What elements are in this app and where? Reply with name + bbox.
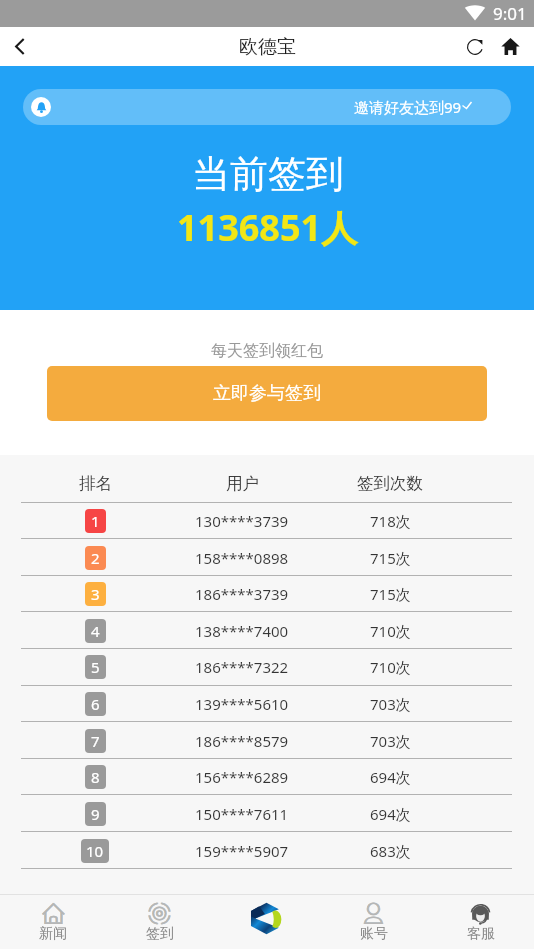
button[interactable]: 邀请好友达到99 <box>23 89 511 125</box>
staticText: 150****7611 <box>195 804 289 824</box>
staticText: 5 <box>91 657 100 677</box>
button[interactable]: 10 <box>0 833 534 869</box>
button[interactable]: 8 <box>0 759 534 795</box>
staticText: 客服 <box>467 925 495 943</box>
staticText: 9:01 <box>493 2 527 25</box>
staticText: 7 <box>91 731 100 751</box>
staticText: 715次 <box>370 548 411 568</box>
staticText: 6 <box>91 694 100 714</box>
staticText: 账号 <box>360 925 388 943</box>
staticText: 159****5907 <box>195 841 289 861</box>
staticText: 邀请好友达到99 <box>354 97 462 117</box>
staticText: 排名 <box>79 473 112 494</box>
button[interactable]: 新闻 <box>0 895 106 949</box>
button[interactable]: Home <box>493 27 527 66</box>
staticText: 每天签到领红包 <box>211 341 323 361</box>
button[interactable]: 6 <box>0 686 534 722</box>
staticText: 715次 <box>370 584 411 604</box>
staticText: 签到 <box>146 925 174 943</box>
button[interactable]: 1 <box>0 503 534 539</box>
staticText: 186****3739 <box>195 584 289 604</box>
staticText: 8 <box>91 767 100 787</box>
staticText: 156****6289 <box>195 767 289 787</box>
staticText: 1136851人 <box>177 203 358 252</box>
staticText: 138****7400 <box>195 621 289 641</box>
button[interactable]: 2 <box>0 540 534 576</box>
staticText: 130****3739 <box>195 511 289 531</box>
staticText: 683次 <box>370 841 411 861</box>
staticText: 10 <box>86 841 104 861</box>
button[interactable]: 账号 <box>320 895 427 949</box>
button[interactable]: 9 <box>0 796 534 832</box>
staticText: 186****8579 <box>195 731 289 751</box>
button[interactable]: 立即参与签到 <box>47 366 487 421</box>
staticText: 710次 <box>370 621 411 641</box>
staticText: 703次 <box>370 731 411 751</box>
staticText: 新闻 <box>39 925 67 943</box>
staticText: 1 <box>91 511 100 531</box>
staticText: 718次 <box>370 511 411 531</box>
staticText: 139****5610 <box>195 694 289 714</box>
button[interactable]: Home logo <box>213 895 320 949</box>
staticText: 2 <box>91 548 100 568</box>
staticText: 703次 <box>370 694 411 714</box>
staticText: 签到次数 <box>357 473 423 494</box>
button[interactable]: 4 <box>0 613 534 649</box>
staticText: 用户 <box>226 473 259 494</box>
staticText: 158****0898 <box>195 548 289 568</box>
staticText: 710次 <box>370 657 411 677</box>
button[interactable]: 签到 <box>106 895 213 949</box>
staticText: 欧德宝 <box>239 35 296 59</box>
button[interactable]: 3 <box>0 576 534 612</box>
staticText: 当前签到 <box>192 150 344 198</box>
staticText: 3 <box>91 584 100 604</box>
staticText: 694次 <box>370 767 411 787</box>
button[interactable]: Refresh <box>458 27 492 66</box>
button[interactable]: 客服 <box>427 895 534 949</box>
button[interactable]: Back <box>0 27 40 66</box>
staticText: 694次 <box>370 804 411 824</box>
button[interactable]: 7 <box>0 723 534 759</box>
staticText: 186****7322 <box>195 657 289 677</box>
staticText: 9 <box>91 804 100 824</box>
staticText: 立即参与签到 <box>213 382 321 405</box>
staticText: 4 <box>91 621 100 641</box>
button[interactable]: 5 <box>0 649 534 685</box>
